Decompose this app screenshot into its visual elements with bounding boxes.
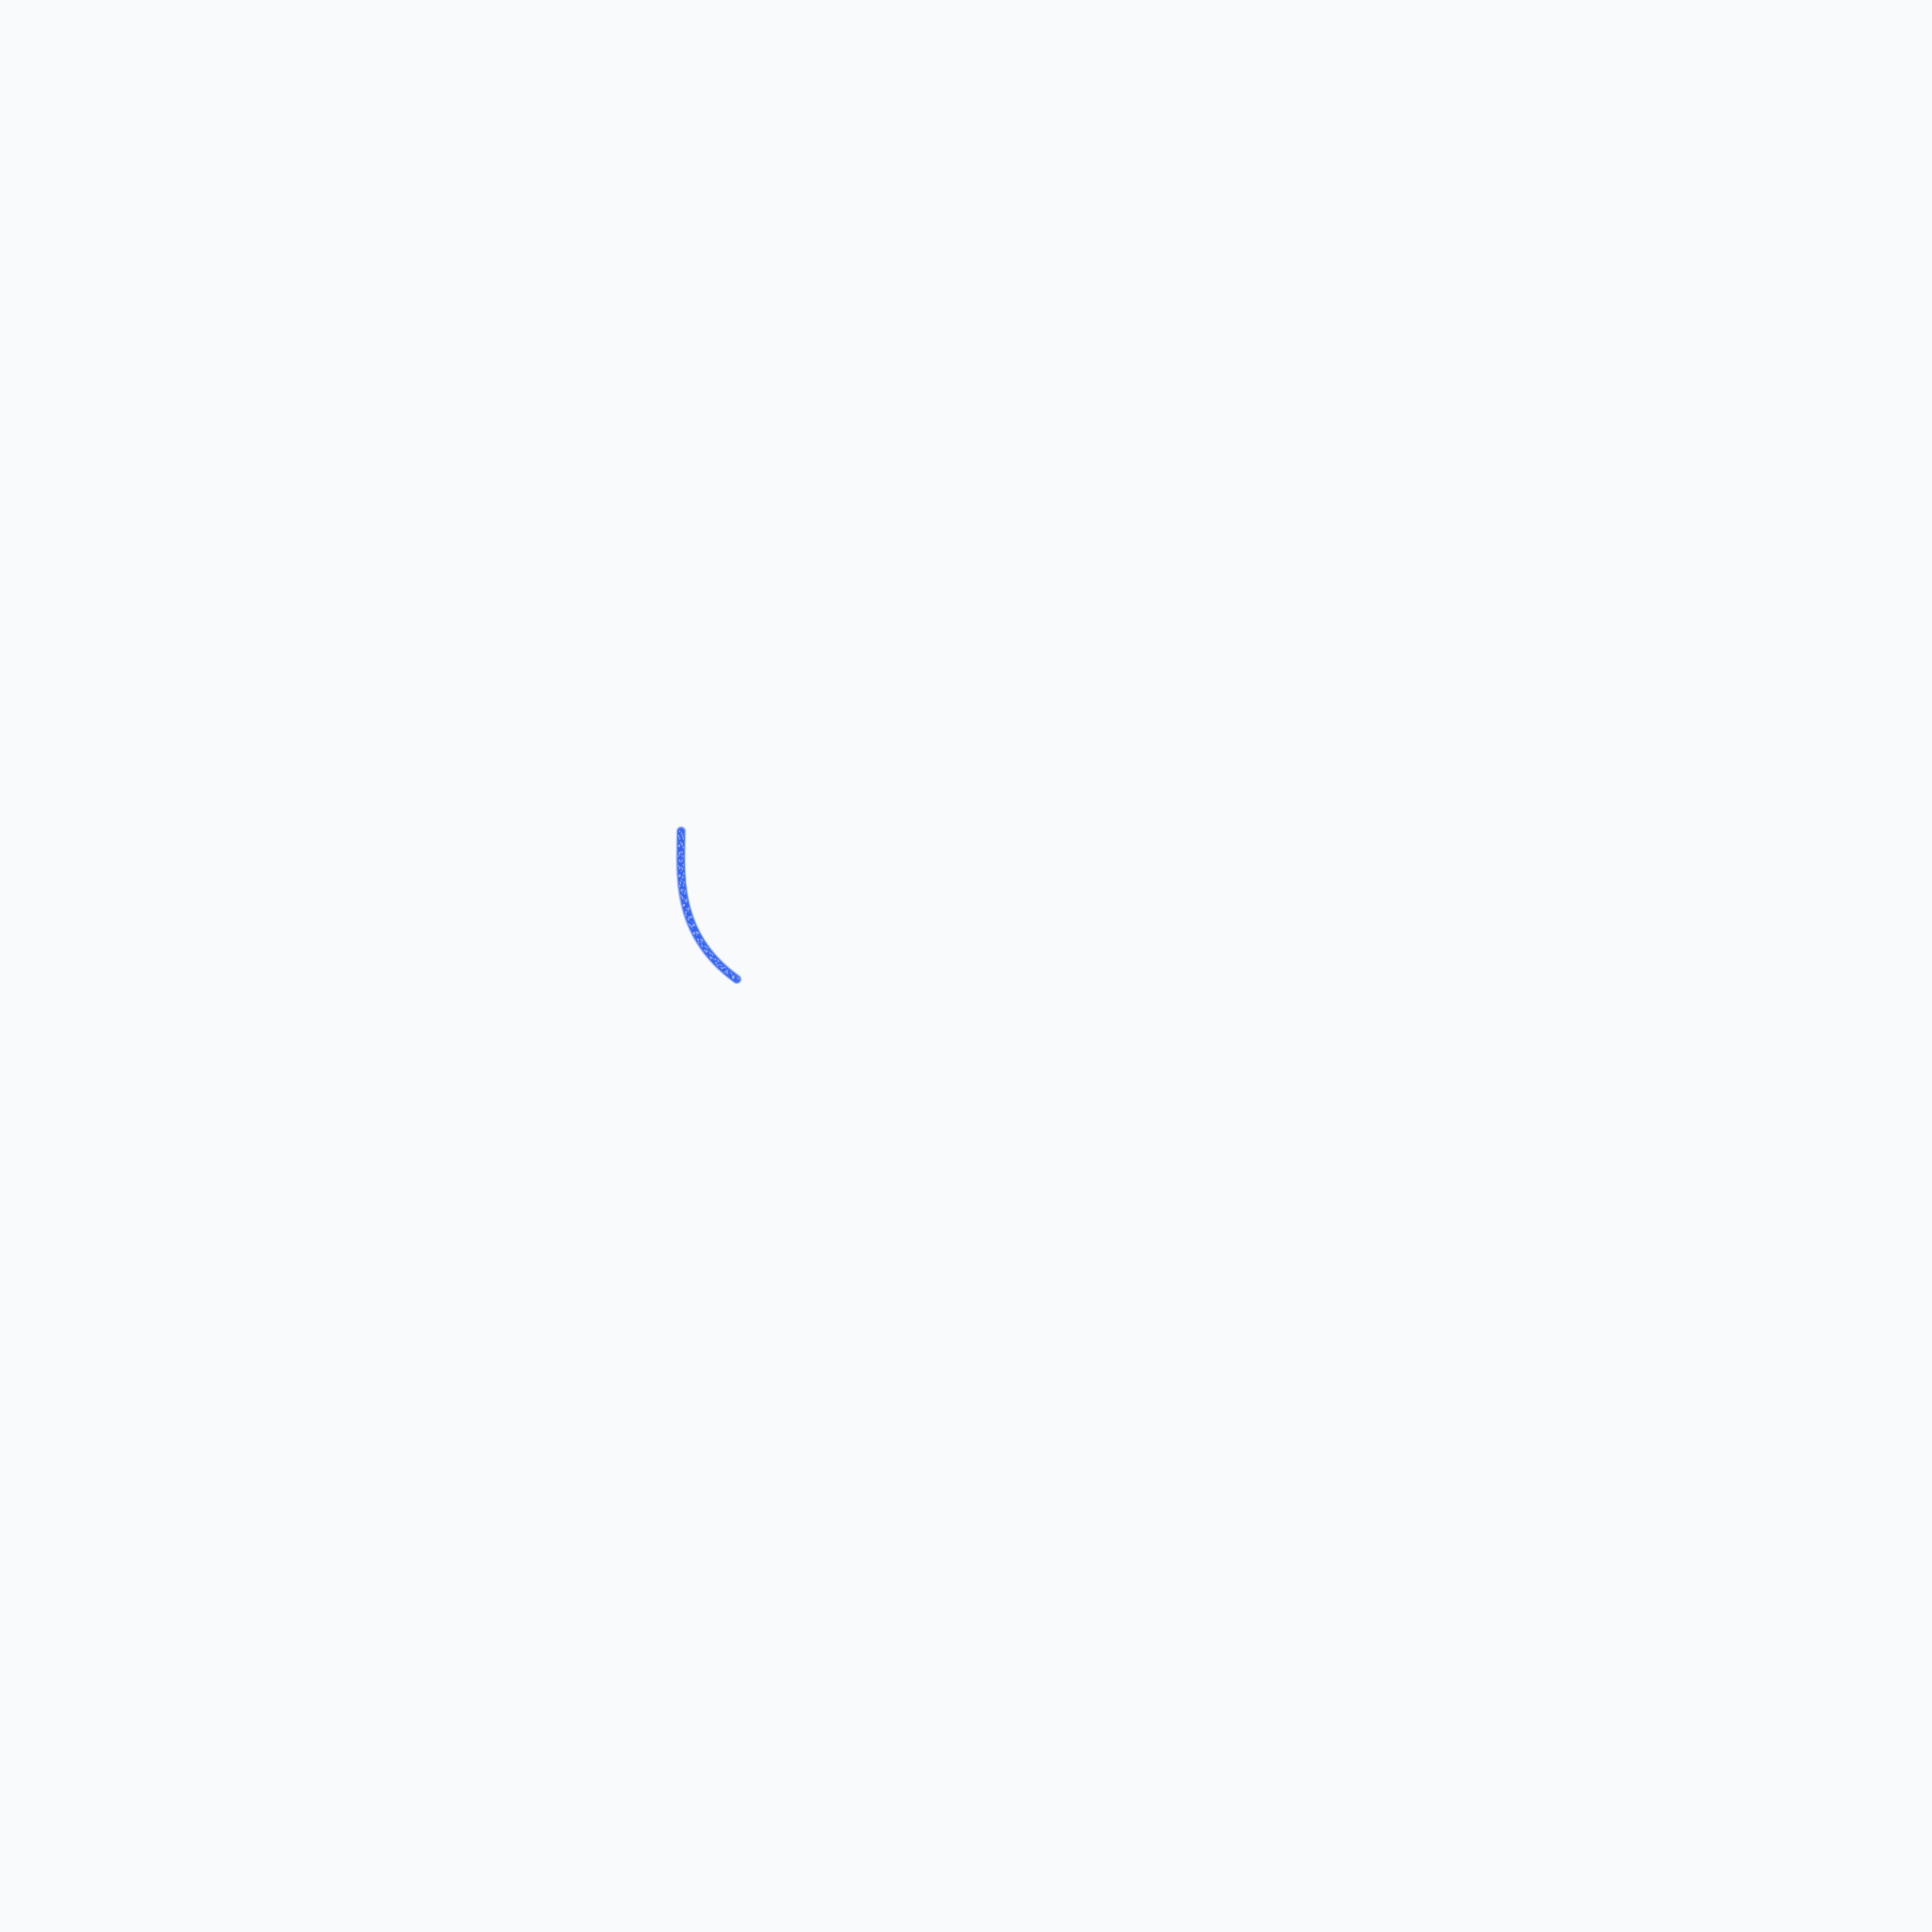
button[interactable]: Drawing canvas	[0, 0, 1932, 1932]
